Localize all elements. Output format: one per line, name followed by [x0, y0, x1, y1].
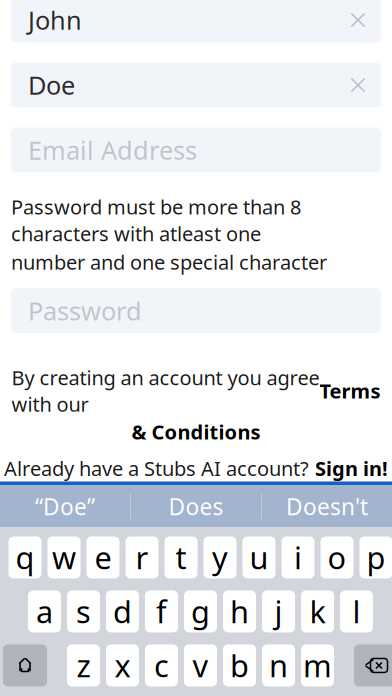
staticText: m	[303, 645, 332, 686]
button[interactable]: e	[86, 536, 119, 578]
button[interactable]: l	[340, 590, 373, 632]
button[interactable]: Clear text	[341, 62, 375, 107]
staticText: Password	[28, 294, 142, 327]
staticText: By creating an account you agree with ou…	[11, 364, 319, 417]
staticText: o	[327, 537, 346, 578]
button[interactable]: Already have a Stubs AI account?	[4, 455, 388, 481]
button[interactable]: w	[47, 536, 80, 578]
button[interactable]: j	[262, 590, 295, 632]
staticText: b	[230, 645, 249, 686]
button[interactable]: x	[106, 644, 139, 686]
button[interactable]: h	[223, 590, 256, 632]
staticText: y	[212, 537, 228, 578]
button[interactable]: b	[223, 644, 256, 686]
staticText: p	[366, 537, 385, 578]
button[interactable]: p	[359, 536, 392, 578]
staticText: Already have a Stubs AI account?	[4, 455, 309, 481]
staticText: s	[76, 591, 91, 632]
staticText: v	[192, 645, 208, 686]
staticText: c	[154, 645, 169, 686]
button[interactable]: Password	[11, 288, 381, 333]
button[interactable]: z	[67, 644, 100, 686]
button[interactable]: m	[301, 644, 334, 686]
button[interactable]: f	[145, 590, 178, 632]
button[interactable]: s	[67, 590, 100, 632]
button[interactable]: q	[8, 536, 41, 578]
staticText: e	[94, 537, 111, 578]
button[interactable]: Clear text	[341, 0, 375, 42]
staticText: Doe	[28, 68, 75, 102]
button[interactable]: c	[145, 644, 178, 686]
button[interactable]: Email Address	[11, 127, 381, 172]
button[interactable]: a	[28, 590, 61, 632]
staticText: w	[52, 537, 76, 578]
button[interactable]: o	[320, 536, 353, 578]
button[interactable]: Does	[131, 485, 261, 527]
staticText: d	[113, 591, 132, 632]
staticText: q	[15, 537, 34, 578]
staticText: Sign in!	[315, 455, 388, 481]
staticText: i	[294, 537, 302, 578]
staticText: n	[269, 645, 288, 686]
staticText: z	[76, 645, 90, 686]
button[interactable]: “Doe”	[0, 485, 130, 527]
staticText: Terms	[319, 377, 380, 404]
staticText: “Doe”	[35, 491, 95, 521]
staticText: f	[156, 591, 167, 632]
staticText: Email Address	[28, 133, 197, 167]
button[interactable]: g	[184, 590, 217, 632]
staticText: r	[135, 537, 148, 578]
staticText: number and one special character	[11, 249, 327, 275]
button[interactable]: u	[242, 536, 275, 578]
staticText: Password must be more than 8 characters …	[11, 193, 301, 247]
staticText: l	[352, 591, 360, 632]
staticText: a	[36, 591, 53, 632]
staticText: h	[230, 591, 249, 632]
button[interactable]: By creating an account you agree with ou…	[11, 364, 380, 445]
staticText: & Conditions	[131, 418, 260, 445]
button[interactable]: i	[281, 536, 314, 578]
staticText: j	[274, 591, 282, 632]
staticText: t	[175, 537, 186, 578]
button[interactable]: Delete	[354, 644, 392, 686]
button[interactable]: d	[106, 590, 139, 632]
staticText: k	[309, 591, 325, 632]
button[interactable]: Shift	[3, 644, 47, 686]
staticText: Doesn't	[286, 491, 368, 521]
button[interactable]: y	[203, 536, 236, 578]
button[interactable]: Doesn't	[262, 485, 392, 527]
staticText: John	[28, 3, 82, 37]
button[interactable]: t	[164, 536, 197, 578]
staticText: g	[191, 591, 210, 632]
staticText: Does	[168, 491, 223, 521]
button[interactable]: n	[262, 644, 295, 686]
button[interactable]: r	[125, 536, 158, 578]
button[interactable]: k	[301, 590, 334, 632]
button[interactable]: v	[184, 644, 217, 686]
staticText: x	[114, 645, 130, 686]
staticText: u	[249, 537, 268, 578]
